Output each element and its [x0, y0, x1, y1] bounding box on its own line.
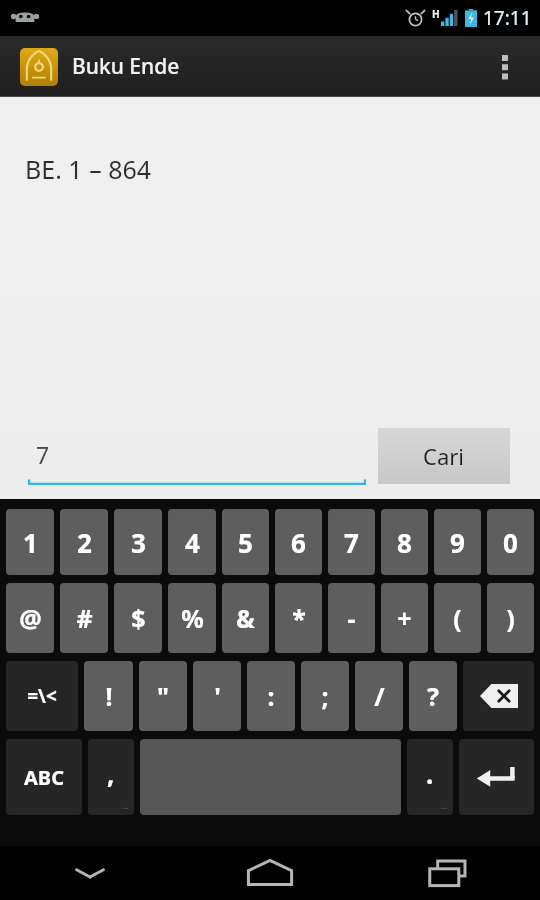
button[interactable]: 0 — [487, 509, 534, 575]
staticText: ! — [105, 679, 113, 713]
button[interactable]: 2 — [60, 509, 108, 575]
staticText: 0 — [503, 525, 518, 560]
button[interactable]: ? — [409, 661, 457, 731]
staticText: / — [374, 679, 385, 713]
staticText: 1 — [23, 525, 38, 560]
staticText: & — [236, 601, 255, 635]
staticText: ABC — [24, 764, 64, 791]
staticText: BE. 1 – 864 — [25, 152, 152, 186]
button[interactable]: - — [328, 583, 375, 653]
button[interactable]: & — [222, 583, 269, 653]
button[interactable]: % — [168, 583, 216, 653]
staticText: 9 — [450, 525, 465, 560]
button[interactable]: ) — [487, 583, 534, 653]
staticText: 3 — [131, 525, 146, 560]
button[interactable]: ; — [301, 661, 349, 731]
button[interactable]: Enter — [459, 739, 534, 815]
staticText: H — [432, 7, 440, 21]
staticText: , — [107, 756, 115, 791]
button[interactable]: + — [381, 583, 428, 653]
button[interactable]: Home — [180, 846, 360, 900]
staticText: 7 — [344, 525, 359, 560]
staticText: * — [292, 601, 306, 635]
staticText: ? — [427, 679, 439, 713]
button[interactable]: 9 — [434, 509, 481, 575]
staticText: 7 — [36, 439, 50, 470]
button[interactable]: @ — [6, 583, 54, 653]
staticText: 6 — [291, 525, 306, 560]
button[interactable]: $ — [114, 583, 162, 653]
staticText: 5 — [238, 525, 253, 560]
staticText: : — [267, 679, 275, 713]
staticText: ; — [321, 679, 329, 713]
button[interactable]: , — [88, 739, 134, 815]
staticText: Cari — [423, 441, 465, 471]
staticText: Buku Ende — [72, 52, 180, 81]
button[interactable]: Hide keyboard — [0, 846, 180, 900]
button[interactable]: 5 — [222, 509, 269, 575]
staticText: % — [181, 601, 204, 635]
button[interactable]: 4 — [168, 509, 216, 575]
staticText: ( — [453, 601, 462, 635]
button[interactable]: 7 — [328, 509, 375, 575]
staticText: . — [426, 756, 434, 791]
button[interactable]: 7 — [28, 426, 366, 486]
button[interactable]: " — [139, 661, 187, 731]
staticText: # — [76, 601, 93, 635]
button[interactable]: More options — [470, 36, 540, 97]
button[interactable]: Cari — [378, 428, 510, 484]
button[interactable]: 3 — [114, 509, 162, 575]
button[interactable]: . — [407, 739, 453, 815]
staticText: 2 — [77, 525, 92, 560]
button[interactable]: ' — [193, 661, 241, 731]
staticText: ' — [214, 679, 221, 713]
button[interactable]: =\< — [6, 661, 78, 731]
staticText: @ — [19, 601, 42, 635]
staticText: ) — [506, 601, 515, 635]
button[interactable]: 8 — [381, 509, 428, 575]
staticText: + — [397, 601, 412, 635]
staticText: " — [157, 679, 169, 713]
button[interactable]: : — [247, 661, 295, 731]
button[interactable]: Recent apps — [360, 846, 540, 900]
button[interactable]: Backspace — [463, 661, 534, 731]
staticText: 8 — [397, 525, 412, 560]
button[interactable]: # — [60, 583, 108, 653]
button[interactable]: 6 — [275, 509, 322, 575]
button[interactable]: 1 — [6, 509, 54, 575]
button[interactable]: ( — [434, 583, 481, 653]
staticText: =\< — [27, 683, 57, 709]
staticText: - — [347, 601, 356, 635]
staticText: ... — [122, 800, 129, 811]
staticText: ... — [441, 800, 448, 811]
button[interactable]: * — [275, 583, 322, 653]
staticText: 17:11 — [483, 5, 532, 31]
staticText: $ — [131, 601, 146, 635]
button[interactable]: / — [355, 661, 403, 731]
button[interactable]: ! — [84, 661, 133, 731]
staticText: 4 — [185, 525, 200, 560]
button[interactable]: ABC — [6, 739, 82, 815]
